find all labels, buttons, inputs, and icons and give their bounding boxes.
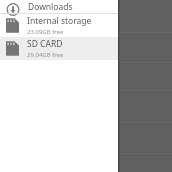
staticText: 23.09GB free: [27, 28, 64, 36]
button[interactable]: SD CARD: [0, 37, 118, 60]
button[interactable]: Downloads: [0, 0, 118, 13]
staticText: SD CARD: [27, 38, 63, 50]
staticText: Downloads: [28, 1, 73, 13]
staticText: Internal storage: [27, 15, 92, 27]
button[interactable]: Internal storage: [0, 14, 118, 37]
staticText: 29.04GB free: [27, 51, 64, 59]
